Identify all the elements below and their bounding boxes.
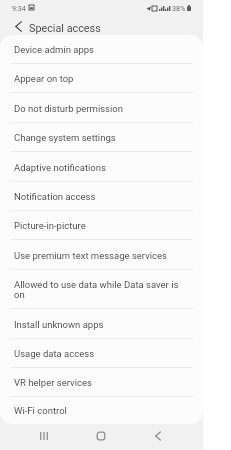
button[interactable]: Use premium text message services	[0, 240, 203, 270]
button[interactable]: Navigate up	[8, 16, 28, 36]
staticText: Change system settings	[14, 132, 116, 143]
staticText: Allowed to use data while Data saver is …	[14, 279, 187, 300]
staticText: Use premium text message services	[14, 250, 167, 261]
staticText: Do not disturb permission	[14, 103, 123, 114]
staticText: Special access	[29, 22, 101, 35]
button[interactable]: Notification access	[0, 182, 203, 211]
button[interactable]: Adaptive notifications	[0, 152, 203, 182]
button[interactable]: Appear on top	[0, 64, 203, 93]
button[interactable]: Back	[147, 425, 169, 447]
button[interactable]: Do not disturb permission	[0, 93, 203, 123]
button[interactable]: Usage data access	[0, 339, 203, 368]
staticText: Wi-Fi control	[14, 405, 67, 416]
staticText: Device admin apps	[14, 44, 94, 55]
button[interactable]: Device admin apps	[0, 35, 203, 64]
staticText: Picture-in-picture	[14, 220, 86, 231]
button[interactable]: VR helper services	[0, 368, 203, 397]
button[interactable]: Picture-in-picture	[0, 211, 203, 240]
button[interactable]: Wi-Fi control	[0, 397, 203, 424]
button[interactable]: Install unknown apps	[0, 309, 203, 339]
staticText: VR helper services	[14, 377, 92, 388]
staticText: Install unknown apps	[14, 319, 104, 330]
staticText: 9:34	[12, 4, 26, 12]
staticText: 38%	[172, 4, 186, 12]
button[interactable]: Change system settings	[0, 123, 203, 152]
staticText: Notification access	[14, 191, 96, 202]
button[interactable]: Home	[90, 425, 112, 447]
button[interactable]: Allowed to use data while Data saver is …	[0, 270, 203, 309]
staticText: Appear on top	[14, 73, 74, 84]
staticText: Adaptive notifications	[14, 162, 106, 173]
staticText: Usage data access	[14, 348, 95, 359]
button[interactable]: Recent apps	[33, 425, 55, 447]
